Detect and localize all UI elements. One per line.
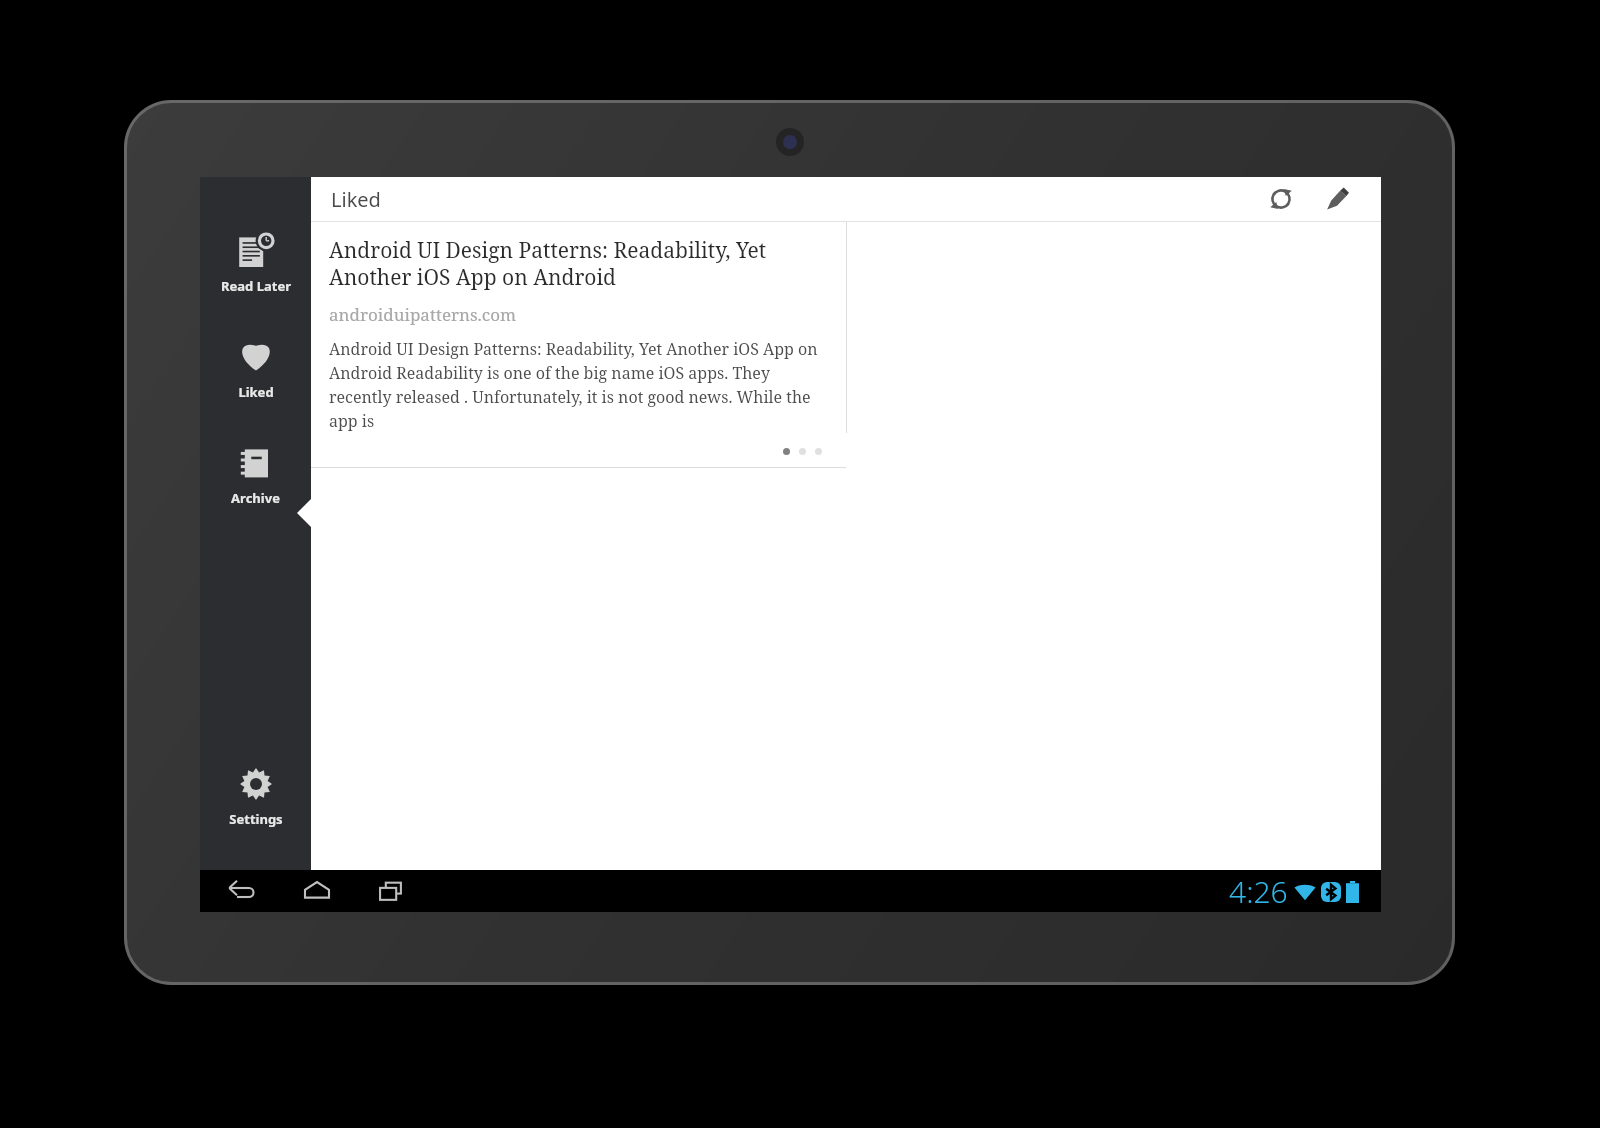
button[interactable]: Refresh [1257, 177, 1305, 221]
staticText: androiduipatterns.com [329, 303, 517, 326]
staticText: Liked [238, 383, 274, 401]
button[interactable]: Read Later [200, 225, 311, 301]
button[interactable]: Back [216, 870, 270, 912]
button[interactable]: Home [290, 870, 344, 912]
staticText: Android UI Design Patterns: Readability,… [329, 338, 818, 432]
button[interactable]: Archive [200, 437, 311, 513]
button[interactable]: Android UI Design Patterns: Readability,… [311, 222, 846, 468]
staticText: Settings [229, 810, 283, 828]
button[interactable]: Liked [200, 331, 311, 407]
button[interactable]: Recent apps [364, 870, 418, 912]
staticText: 4:26 [1229, 871, 1288, 912]
button[interactable]: Compose [1313, 177, 1361, 221]
staticText: Archive [231, 489, 280, 507]
button[interactable]: Settings [200, 758, 311, 834]
staticText: Read Later [221, 277, 291, 295]
staticText: Android UI Design Patterns: Readability,… [329, 236, 818, 291]
staticText: Liked [331, 186, 381, 213]
